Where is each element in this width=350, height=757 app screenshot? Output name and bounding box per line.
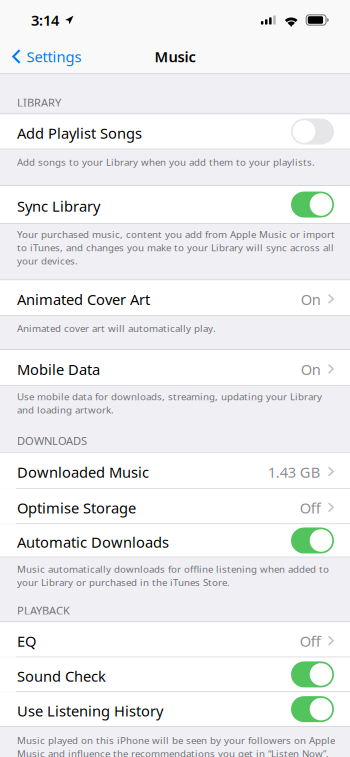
staticText: Sync Library [17,196,100,216]
button[interactable]: Add Playlist Songs [0,114,350,149]
staticText: Music automatically downloads for offlin… [17,562,329,589]
staticText: DOWNLOADS [17,433,87,448]
staticText: Use mobile data for downloads, streaming… [17,390,322,416]
button[interactable]: EQ [0,622,350,657]
staticText: Animated Cover Art [17,289,150,309]
staticText: Off [300,631,321,651]
button[interactable]: Mobile Data [0,350,350,385]
staticText: Settings [26,46,81,66]
staticText: Sound Check [17,666,106,686]
staticText: On [301,359,321,379]
staticText: Music [154,46,195,66]
button[interactable]: Downloaded Music [0,453,350,488]
staticText: Music played on this iPhone will be seen… [17,734,335,757]
button[interactable]: Sound Check [0,657,350,691]
staticText: LIBRARY [17,95,61,110]
staticText: EQ [17,631,36,651]
staticText: Add Playlist Songs [17,123,142,143]
button[interactable]: Animated Cover Art [0,280,350,315]
button[interactable]: Optimise Storage [0,489,350,523]
staticText: Off [300,498,321,518]
staticText: Use Listening History [17,701,163,721]
staticText: Your purchased music, content you add fr… [17,228,335,267]
staticText: Mobile Data [17,359,100,379]
button[interactable]: Use Listening History [0,692,350,726]
staticText: On [301,289,321,309]
button[interactable]: Sync Library [0,186,350,223]
staticText: Add songs to your Library when you add t… [17,155,315,169]
staticText: 3:14 [31,10,59,30]
staticText: Optimise Storage [17,498,136,518]
button[interactable]: Settings [0,40,89,73]
staticText: Automatic Downloads [17,532,169,552]
staticText: PLAYBACK [17,603,70,618]
staticText: 1.43 GB [268,462,321,482]
staticText: Animated cover art will automatically pl… [17,322,216,335]
staticText: Downloaded Music [17,462,149,482]
button[interactable]: Automatic Downloads [0,524,350,557]
